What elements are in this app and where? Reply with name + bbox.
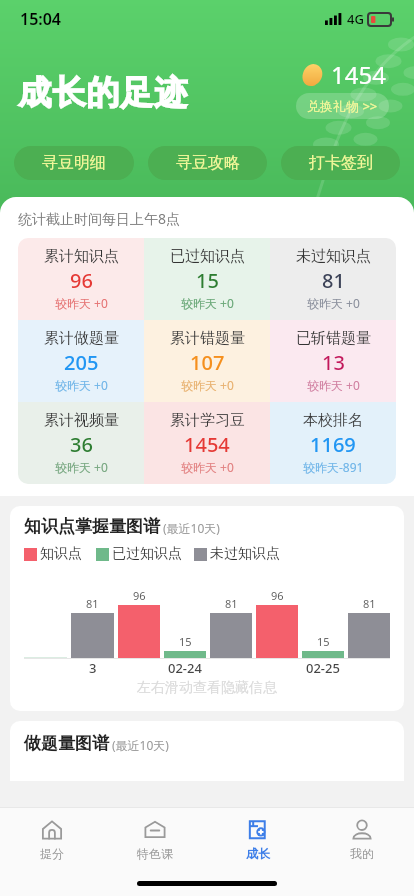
staticText: 兑换礼物 >>: [307, 97, 378, 115]
button[interactable]: 累计错题量: [144, 320, 270, 402]
staticText: 累计错题量: [170, 329, 245, 348]
button[interactable]: 累计学习豆: [144, 402, 270, 484]
button[interactable]: 寻豆攻略: [148, 146, 267, 180]
staticText: 13: [322, 349, 345, 376]
staticText: 做题量图谱: [24, 733, 109, 754]
staticText: 15:04: [20, 8, 62, 30]
staticText: 已斩错题量: [296, 329, 371, 348]
button[interactable]: 我的: [310, 808, 414, 870]
button[interactable]: 特色课: [103, 808, 206, 870]
staticText: 3: [89, 659, 97, 677]
staticText: 已过知识点: [170, 247, 245, 266]
staticText: 成长: [246, 846, 270, 861]
staticText: 81: [322, 267, 345, 294]
staticText: 96: [133, 588, 146, 603]
staticText: 较昨天 +0: [181, 377, 234, 393]
staticText: 统计截止时间每日上午8点: [18, 209, 181, 228]
button[interactable]: 打卡签到: [281, 146, 400, 180]
staticText: 左右滑动查看隐藏信息: [137, 679, 277, 697]
staticText: 特色课: [137, 846, 173, 861]
staticText: 未过知识点: [210, 545, 280, 563]
staticText: 累计知识点: [44, 247, 119, 266]
staticText: 96: [271, 588, 284, 603]
staticText: 15: [196, 267, 219, 294]
staticText: 较昨天 +0: [55, 459, 108, 475]
staticText: 累计视频量: [44, 411, 119, 430]
staticText: 寻豆明细: [42, 153, 106, 173]
button[interactable]: 累计视频量: [18, 402, 144, 484]
staticText: 成长的足迹: [18, 72, 188, 114]
staticText: 累计做题量: [44, 329, 119, 348]
staticText: 15: [317, 634, 330, 649]
staticText: 81: [363, 596, 376, 611]
staticText: 未过知识点: [296, 247, 371, 266]
staticText: 本校排名: [303, 411, 363, 430]
staticText: 较昨天 +0: [55, 377, 108, 393]
button[interactable]: 已斩错题量: [270, 320, 396, 402]
staticText: 205: [64, 349, 99, 376]
button[interactable]: 累计做题量: [18, 320, 144, 402]
button[interactable]: 寻豆明细: [14, 146, 134, 180]
staticText: 寻豆攻略: [176, 153, 240, 173]
staticText: 1454: [331, 58, 386, 91]
staticText: (最近10天): [112, 737, 169, 753]
staticText: 打卡签到: [309, 153, 373, 173]
staticText: 36: [70, 431, 93, 458]
staticText: 02-24: [168, 659, 202, 677]
staticText: 知识点: [40, 545, 82, 563]
staticText: 提分: [40, 846, 64, 861]
staticText: 107: [190, 349, 225, 376]
staticText: 较昨天 +0: [181, 459, 234, 475]
button[interactable]: 兑换礼物 >>: [296, 93, 389, 119]
staticText: 1169: [310, 431, 356, 458]
staticText: 较昨天 +0: [55, 295, 108, 311]
staticText: 较昨天 +0: [307, 295, 360, 311]
staticText: 已过知识点: [112, 545, 182, 563]
staticText: 我的: [350, 846, 374, 861]
staticText: 累计学习豆: [170, 411, 245, 430]
staticText: 较昨天 +0: [181, 295, 234, 311]
staticText: 较昨天 +0: [307, 377, 360, 393]
staticText: (最近10天): [163, 520, 220, 536]
staticText: 81: [225, 596, 238, 611]
staticText: 1454: [184, 431, 230, 458]
staticText: 96: [70, 267, 93, 294]
button[interactable]: 累计知识点: [18, 238, 144, 320]
staticText: 81: [86, 596, 99, 611]
staticText: 15: [179, 634, 192, 649]
button[interactable]: 未过知识点: [270, 238, 396, 320]
staticText: 较昨天-891: [303, 459, 364, 475]
button[interactable]: 成长: [206, 808, 310, 870]
button[interactable]: 本校排名: [270, 402, 396, 484]
staticText: 知识点掌握量图谱: [24, 516, 160, 537]
staticText: 4G: [347, 10, 364, 28]
button[interactable]: 提分: [0, 808, 103, 870]
staticText: 02-25: [306, 659, 340, 677]
button[interactable]: 已过知识点: [144, 238, 270, 320]
